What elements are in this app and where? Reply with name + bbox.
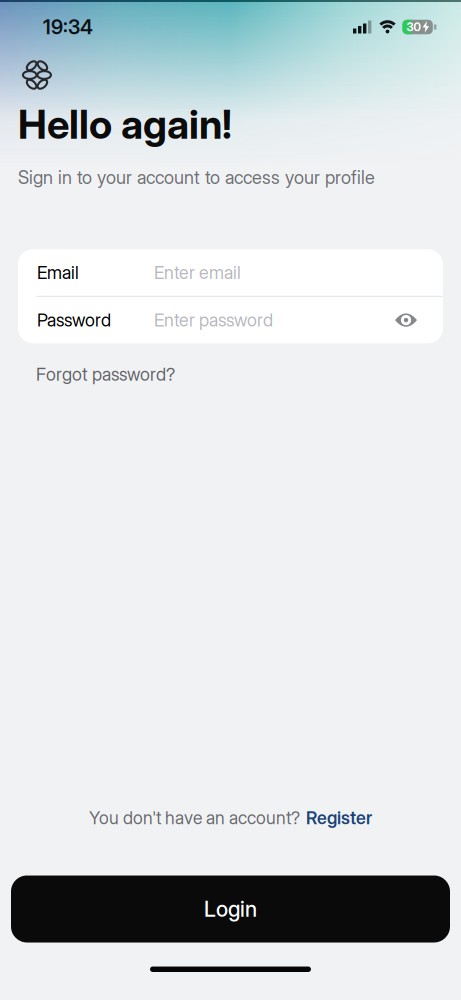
button[interactable]: Show password xyxy=(395,314,443,327)
staticText: Password xyxy=(37,309,111,331)
staticText: Register xyxy=(306,807,372,828)
staticText: Email xyxy=(37,262,79,283)
staticText: Hello again! xyxy=(18,100,232,148)
staticText: 30 xyxy=(406,20,420,34)
button[interactable]: Login xyxy=(11,875,450,942)
staticText: Enter email xyxy=(154,262,241,283)
staticText: Login xyxy=(204,896,257,922)
staticText: Sign in to your account to access your p… xyxy=(18,166,375,188)
button[interactable]: Register xyxy=(306,807,372,828)
staticText: Enter password xyxy=(154,309,273,331)
staticText: You don't have an account? xyxy=(89,807,300,828)
staticText: 19:34 xyxy=(43,15,93,39)
staticText: Forgot password? xyxy=(36,363,175,385)
button[interactable]: Forgot password? xyxy=(36,363,175,385)
